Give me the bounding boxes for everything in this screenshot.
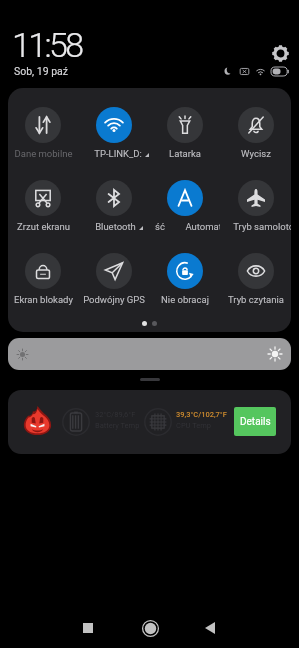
button[interactable]: Nie obracaj <box>149 253 220 306</box>
staticText: Nie obracaj <box>161 294 209 305</box>
staticText: Podwójny GPS <box>83 294 145 305</box>
staticText: Wycisz <box>241 148 271 159</box>
staticText: Tryb czytania <box>228 294 284 305</box>
button[interactable]: Wycisz <box>220 107 291 160</box>
button[interactable]: Recents <box>68 608 108 648</box>
staticText: 11:58 <box>12 25 82 65</box>
button[interactable]: Latarka <box>149 107 220 160</box>
staticText: CPU Temp <box>176 421 212 430</box>
button[interactable]: Dane mobilne <box>8 107 78 160</box>
staticText: 32°C/89,6°F <box>95 410 136 419</box>
staticText: 39,3°C/102,7°F <box>176 410 227 419</box>
button[interactable]: TP-LINK_D: <box>78 107 149 160</box>
staticText: ść <box>155 221 165 232</box>
staticText: Bluetooth <box>95 221 136 232</box>
staticText: Zrzut ekranu <box>17 221 70 232</box>
staticText: Ekran blokady <box>14 294 73 305</box>
staticText: Sob, 19 paź <box>14 65 69 77</box>
button[interactable]: Brightness <box>8 338 291 370</box>
button[interactable]: Tryb samolotowy <box>220 180 291 233</box>
staticText: Battery Temp <box>95 421 140 430</box>
staticText: TP-LINK_D: <box>94 148 142 159</box>
button[interactable]: Settings <box>270 43 291 64</box>
button[interactable]: Podwójny GPS <box>78 253 149 306</box>
button[interactable]: 32°C/89,6°F <box>8 390 291 454</box>
button[interactable]: Details <box>234 407 276 436</box>
button[interactable]: Tryb czytania <box>220 253 291 306</box>
button[interactable]: Zrzut ekranu <box>8 180 78 233</box>
button[interactable]: Back <box>190 608 230 648</box>
staticText: Tryb samolotowy <box>233 221 291 232</box>
button[interactable]: Ekran blokady <box>8 253 78 306</box>
staticText: Details <box>240 416 271 428</box>
button[interactable]: ść <box>149 180 220 233</box>
staticText: Dane mobilne <box>14 148 73 159</box>
button[interactable]: Bluetooth <box>78 180 149 233</box>
staticText: Automatyczna jasność <box>185 221 220 232</box>
button[interactable]: Home <box>130 608 170 648</box>
staticText: Latarka <box>169 148 201 159</box>
